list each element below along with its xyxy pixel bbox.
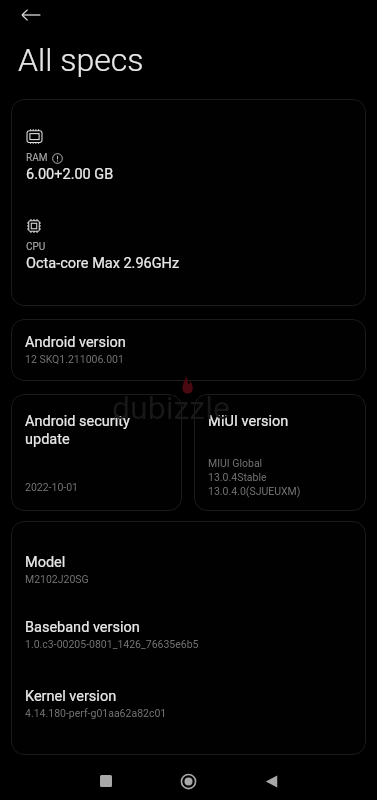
staticText: 12 SKQ1.211006.001 [25, 353, 124, 365]
staticText: Model [25, 554, 66, 571]
staticText: dubizzle [112, 389, 230, 427]
staticText: Baseband version [25, 619, 140, 636]
staticText: Kernel version [25, 688, 117, 705]
staticText: 6.00+2.00 GB [26, 166, 114, 183]
staticText: MIUI Global 13.0.4Stable 13.0.4.0(SJUEUX… [208, 457, 301, 498]
button[interactable]: RAM [11, 99, 366, 306]
staticText: MIUI version [208, 413, 289, 430]
staticText: 4.14.180-perf-g01aa62a82c01 [25, 707, 167, 719]
staticText: 1.0.c3-00205-0801_1426_76635e6b5 [25, 638, 199, 650]
staticText: Android security update [25, 413, 130, 448]
staticText: 2022-10-01 [25, 481, 79, 493]
button[interactable]: Back [16, 0, 45, 29]
staticText: CPU [26, 241, 46, 253]
staticText: RAM [26, 152, 48, 164]
staticText: All specs [18, 41, 144, 79]
button[interactable]: Model [11, 521, 366, 755]
staticText: Octa-core Max 2.96GHz [26, 255, 180, 272]
button[interactable]: Android version [11, 319, 366, 381]
staticText: Android version [25, 334, 126, 351]
button[interactable]: Home [168, 761, 208, 800]
button[interactable]: Recents [86, 761, 126, 800]
button[interactable]: Android security update [11, 394, 182, 511]
staticText: M2102J20SG [25, 573, 89, 585]
button[interactable]: MIUI version [194, 394, 366, 511]
button[interactable]: Back [251, 761, 291, 800]
